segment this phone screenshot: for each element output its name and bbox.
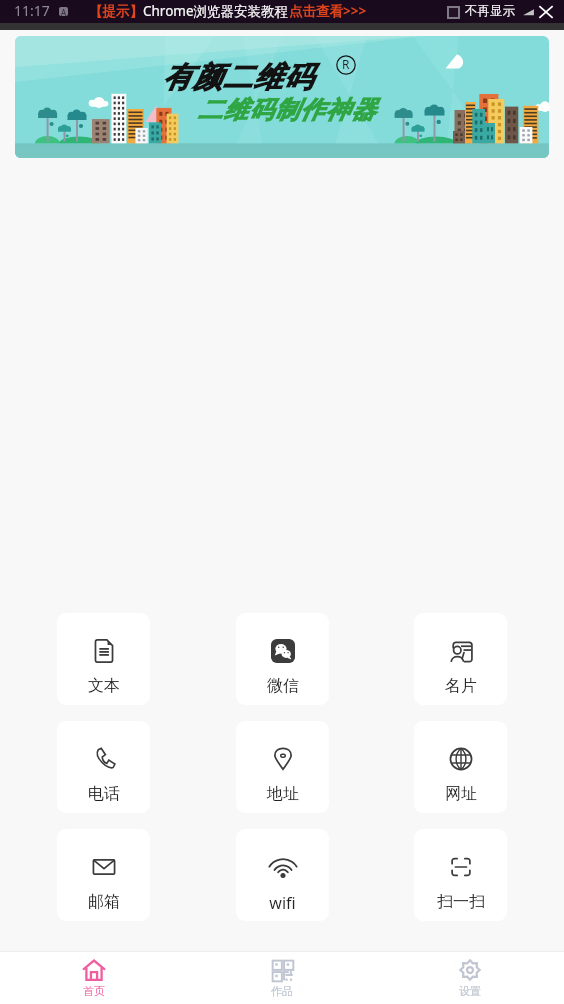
staticText: A (61, 7, 67, 16)
button[interactable]: 名片 (414, 613, 507, 705)
button[interactable]: 电话 (57, 721, 150, 813)
staticText: 11:17 (14, 1, 50, 20)
button[interactable]: 有颜二维码 (15, 36, 549, 158)
staticText: 电话 (88, 784, 120, 804)
staticText: 首页 (83, 984, 105, 998)
staticText: 网址 (445, 784, 477, 804)
button[interactable]: 地址 (236, 721, 329, 813)
staticText: 文本 (88, 676, 120, 696)
staticText: 作品 (271, 984, 293, 998)
staticText: wifi (269, 892, 296, 914)
button[interactable]: Close (537, 3, 555, 21)
button[interactable]: 文本 (57, 613, 150, 705)
staticText: 微信 (267, 676, 299, 696)
staticText: 设置 (459, 984, 481, 998)
button[interactable]: 设置 (376, 952, 564, 1004)
button[interactable]: 邮箱 (57, 829, 150, 921)
staticText: 有颜二维码 (162, 59, 313, 96)
button[interactable]: 网址 (414, 721, 507, 813)
staticText: R (342, 56, 350, 72)
staticText: 地址 (267, 784, 299, 804)
button[interactable]: 首页 (0, 952, 188, 1004)
button[interactable]: 微信 (236, 613, 329, 705)
staticText: 邮箱 (88, 892, 120, 912)
staticText: 【提示】 (89, 3, 143, 20)
button[interactable]: 作品 (188, 952, 376, 1004)
button[interactable]: wifi (236, 829, 329, 921)
staticText: 不再显示 (465, 3, 515, 19)
staticText: 二维码制作神器 (198, 95, 377, 125)
button[interactable]: 扫一扫 (414, 829, 507, 921)
staticText: 点击查看>>> (289, 2, 367, 20)
staticText: 扫一扫 (437, 892, 485, 912)
staticText: Chrome浏览器安装教程 (143, 2, 289, 20)
staticText: 名片 (445, 676, 477, 696)
